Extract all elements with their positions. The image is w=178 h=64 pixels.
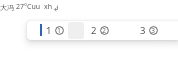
staticText: 3	[140, 24, 146, 37]
staticText: 1	[57, 26, 62, 35]
button[interactable]: 2	[91, 21, 109, 40]
staticText: 3	[151, 26, 156, 35]
button[interactable]: 3	[140, 21, 158, 40]
button[interactable]: 1	[46, 21, 64, 40]
staticText: 大冯	[0, 3, 14, 12]
staticText: 1	[46, 24, 52, 37]
staticText: 2	[91, 24, 97, 37]
staticText: 27°Cuu	[16, 2, 41, 12]
staticText: 2	[102, 26, 107, 35]
staticText: xh	[44, 2, 53, 12]
